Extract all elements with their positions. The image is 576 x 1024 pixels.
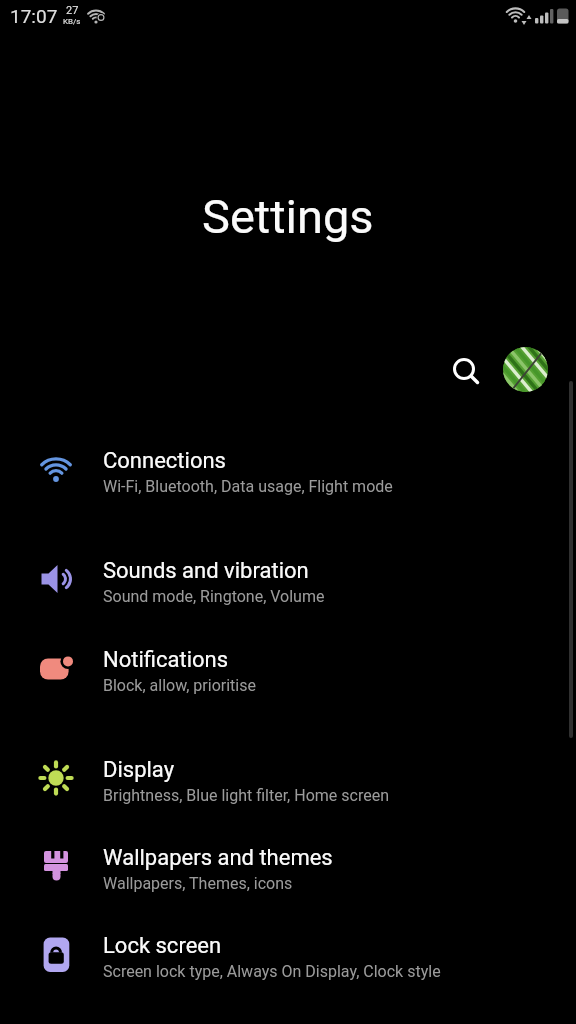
button[interactable]: Connections <box>0 437 576 507</box>
button[interactable]: Sounds and vibration <box>0 547 576 617</box>
staticText: Display <box>103 757 175 783</box>
button[interactable] <box>503 347 548 392</box>
staticText: Wallpapers, Themes, icons <box>103 874 293 893</box>
staticText: Block, allow, prioritise <box>103 676 256 695</box>
button[interactable]: Lock screen <box>0 922 576 992</box>
button[interactable]: Notifications <box>0 636 576 706</box>
button[interactable]: Display <box>0 746 576 816</box>
staticText: KB/s <box>63 17 81 26</box>
button[interactable] <box>448 353 484 389</box>
staticText: Wi-Fi, Bluetooth, Data usage, Flight mod… <box>103 477 393 496</box>
button[interactable]: Wallpapers and themes <box>0 834 576 904</box>
staticText: Sound mode, Ringtone, Volume <box>103 587 325 606</box>
staticText: Sounds and vibration <box>103 558 309 584</box>
staticText: Brightness, Blue light filter, Home scre… <box>103 786 389 805</box>
staticText: Connections <box>103 448 226 474</box>
staticText: Settings <box>202 189 374 244</box>
staticText: Wallpapers and themes <box>103 845 333 871</box>
staticText: 27 <box>66 4 79 17</box>
staticText: Lock screen <box>103 933 222 959</box>
staticText: Notifications <box>103 647 229 673</box>
staticText: 17:07 <box>10 5 58 27</box>
staticText: Screen lock type, Always On Display, Clo… <box>103 962 441 981</box>
